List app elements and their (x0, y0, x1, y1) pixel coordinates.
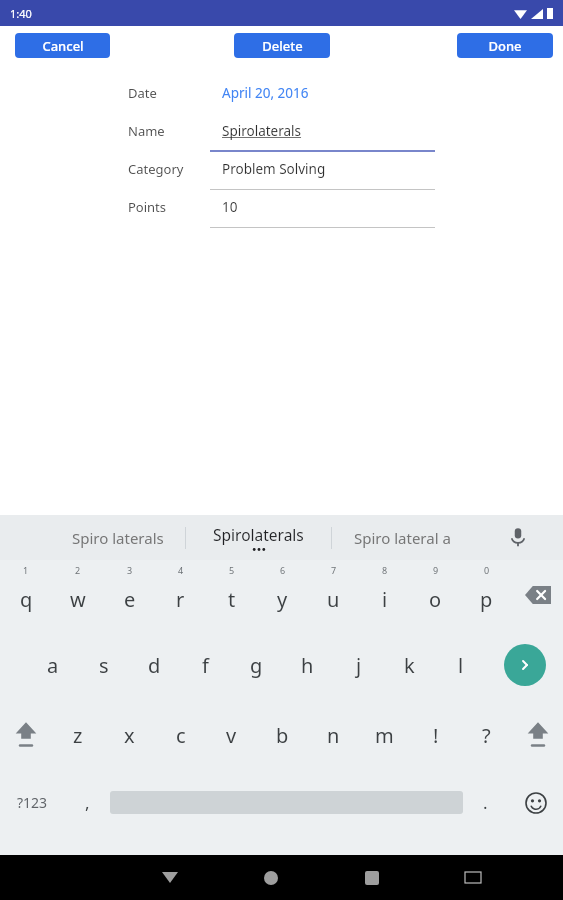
button[interactable]: Backspace (512, 560, 563, 630)
staticText: o (429, 586, 442, 613)
staticText: Points (128, 198, 167, 216)
staticText: Date (128, 84, 157, 102)
staticText: ? (482, 722, 491, 749)
staticText: g (250, 652, 263, 679)
staticText: 9 (433, 564, 439, 576)
staticText: 0 (484, 564, 490, 576)
button[interactable]: Recent apps (321, 855, 422, 900)
button[interactable]: v (206, 700, 257, 770)
staticText: i (382, 586, 388, 613)
button[interactable]: j (333, 630, 384, 700)
button[interactable]: Spiro lateral a (332, 515, 472, 560)
staticText: j (356, 652, 362, 679)
button[interactable]: Shift (512, 700, 563, 770)
button[interactable]: ? (461, 700, 512, 770)
staticText: Spirolaterals (213, 524, 304, 545)
button[interactable]: 2 (52, 560, 104, 630)
button[interactable]: 6 (257, 560, 308, 630)
staticText: Spiro lateral a (354, 528, 451, 548)
button[interactable]: 1 (0, 560, 52, 630)
staticText: y (277, 586, 288, 613)
button[interactable]: Hide keyboard (120, 855, 220, 900)
button[interactable]: . (463, 770, 508, 835)
button[interactable]: Delete (234, 33, 330, 58)
staticText: 10 (222, 198, 238, 216)
button[interactable]: Date (0, 76, 563, 114)
button[interactable]: Spiro laterals (50, 515, 185, 560)
button[interactable]: d (129, 630, 180, 700)
staticText: z (73, 722, 83, 749)
button[interactable]: 9 (410, 560, 461, 630)
button[interactable]: h (282, 630, 333, 700)
button[interactable]: Shift (0, 700, 52, 770)
button[interactable]: l (435, 630, 486, 700)
button[interactable]: x (104, 700, 155, 770)
staticText: 2 (75, 564, 81, 576)
staticText: 1:40 (10, 6, 32, 21)
button[interactable]: n (308, 700, 359, 770)
staticText: Problem Solving (222, 160, 326, 178)
button[interactable]: c (155, 700, 206, 770)
staticText: 8 (382, 564, 388, 576)
button[interactable]: a (27, 630, 78, 700)
staticText: , (85, 791, 90, 814)
staticText: t (228, 586, 236, 613)
staticText: v (226, 722, 237, 749)
staticText: b (276, 722, 289, 749)
staticText: l (458, 652, 464, 679)
staticText: n (327, 722, 340, 749)
staticText: 1 (23, 564, 29, 576)
button[interactable]: g (231, 630, 282, 700)
button[interactable]: Category (0, 152, 563, 190)
staticText: k (404, 652, 415, 679)
button[interactable]: Switch keyboard (422, 855, 523, 900)
staticText: c (176, 722, 186, 749)
button[interactable]: ?123 (0, 770, 65, 835)
button[interactable]: 5 (206, 560, 257, 630)
button[interactable]: m (359, 700, 410, 770)
staticText: 6 (280, 564, 286, 576)
button[interactable]: Cancel (15, 33, 110, 58)
staticText: 4 (178, 564, 184, 576)
staticText: Category (128, 160, 184, 178)
button[interactable]: , (65, 770, 110, 835)
button[interactable]: Space (110, 770, 463, 835)
button[interactable]: Emoji (508, 770, 563, 835)
staticText: x (124, 722, 135, 749)
staticText: 3 (127, 564, 133, 576)
staticText: d (148, 652, 161, 679)
button[interactable]: Voice input (472, 515, 563, 560)
button[interactable]: 7 (308, 560, 359, 630)
staticText: Delete (262, 37, 303, 55)
button[interactable]: Home (220, 855, 321, 900)
button[interactable]: Points (0, 190, 563, 228)
button[interactable]: 3 (104, 560, 155, 630)
button[interactable]: s (78, 630, 129, 700)
button[interactable]: 0 (461, 560, 512, 630)
staticText: April 20, 2016 (222, 84, 309, 102)
staticText: r (176, 586, 185, 613)
staticText: m (375, 722, 394, 749)
staticText: q (20, 586, 33, 613)
button[interactable]: Spirolaterals (186, 515, 331, 560)
staticText: a (47, 652, 59, 679)
button[interactable]: k (384, 630, 435, 700)
staticText: Name (128, 122, 165, 140)
button[interactable]: f (180, 630, 231, 700)
staticText: 7 (331, 564, 337, 576)
button[interactable]: 8 (359, 560, 410, 630)
button[interactable]: Name (0, 114, 563, 152)
staticText: s (99, 652, 109, 679)
button[interactable]: z (52, 700, 104, 770)
button[interactable]: ! (410, 700, 461, 770)
staticText: . (483, 791, 488, 814)
staticText: 5 (229, 564, 235, 576)
staticText: ! (433, 722, 439, 749)
button[interactable]: b (257, 700, 308, 770)
button[interactable]: Enter (486, 630, 563, 700)
staticText: Cancel (42, 37, 84, 55)
staticText: h (301, 652, 314, 679)
button[interactable]: Done (457, 33, 553, 58)
staticText: Spiro laterals (72, 528, 164, 548)
button[interactable]: 4 (155, 560, 206, 630)
